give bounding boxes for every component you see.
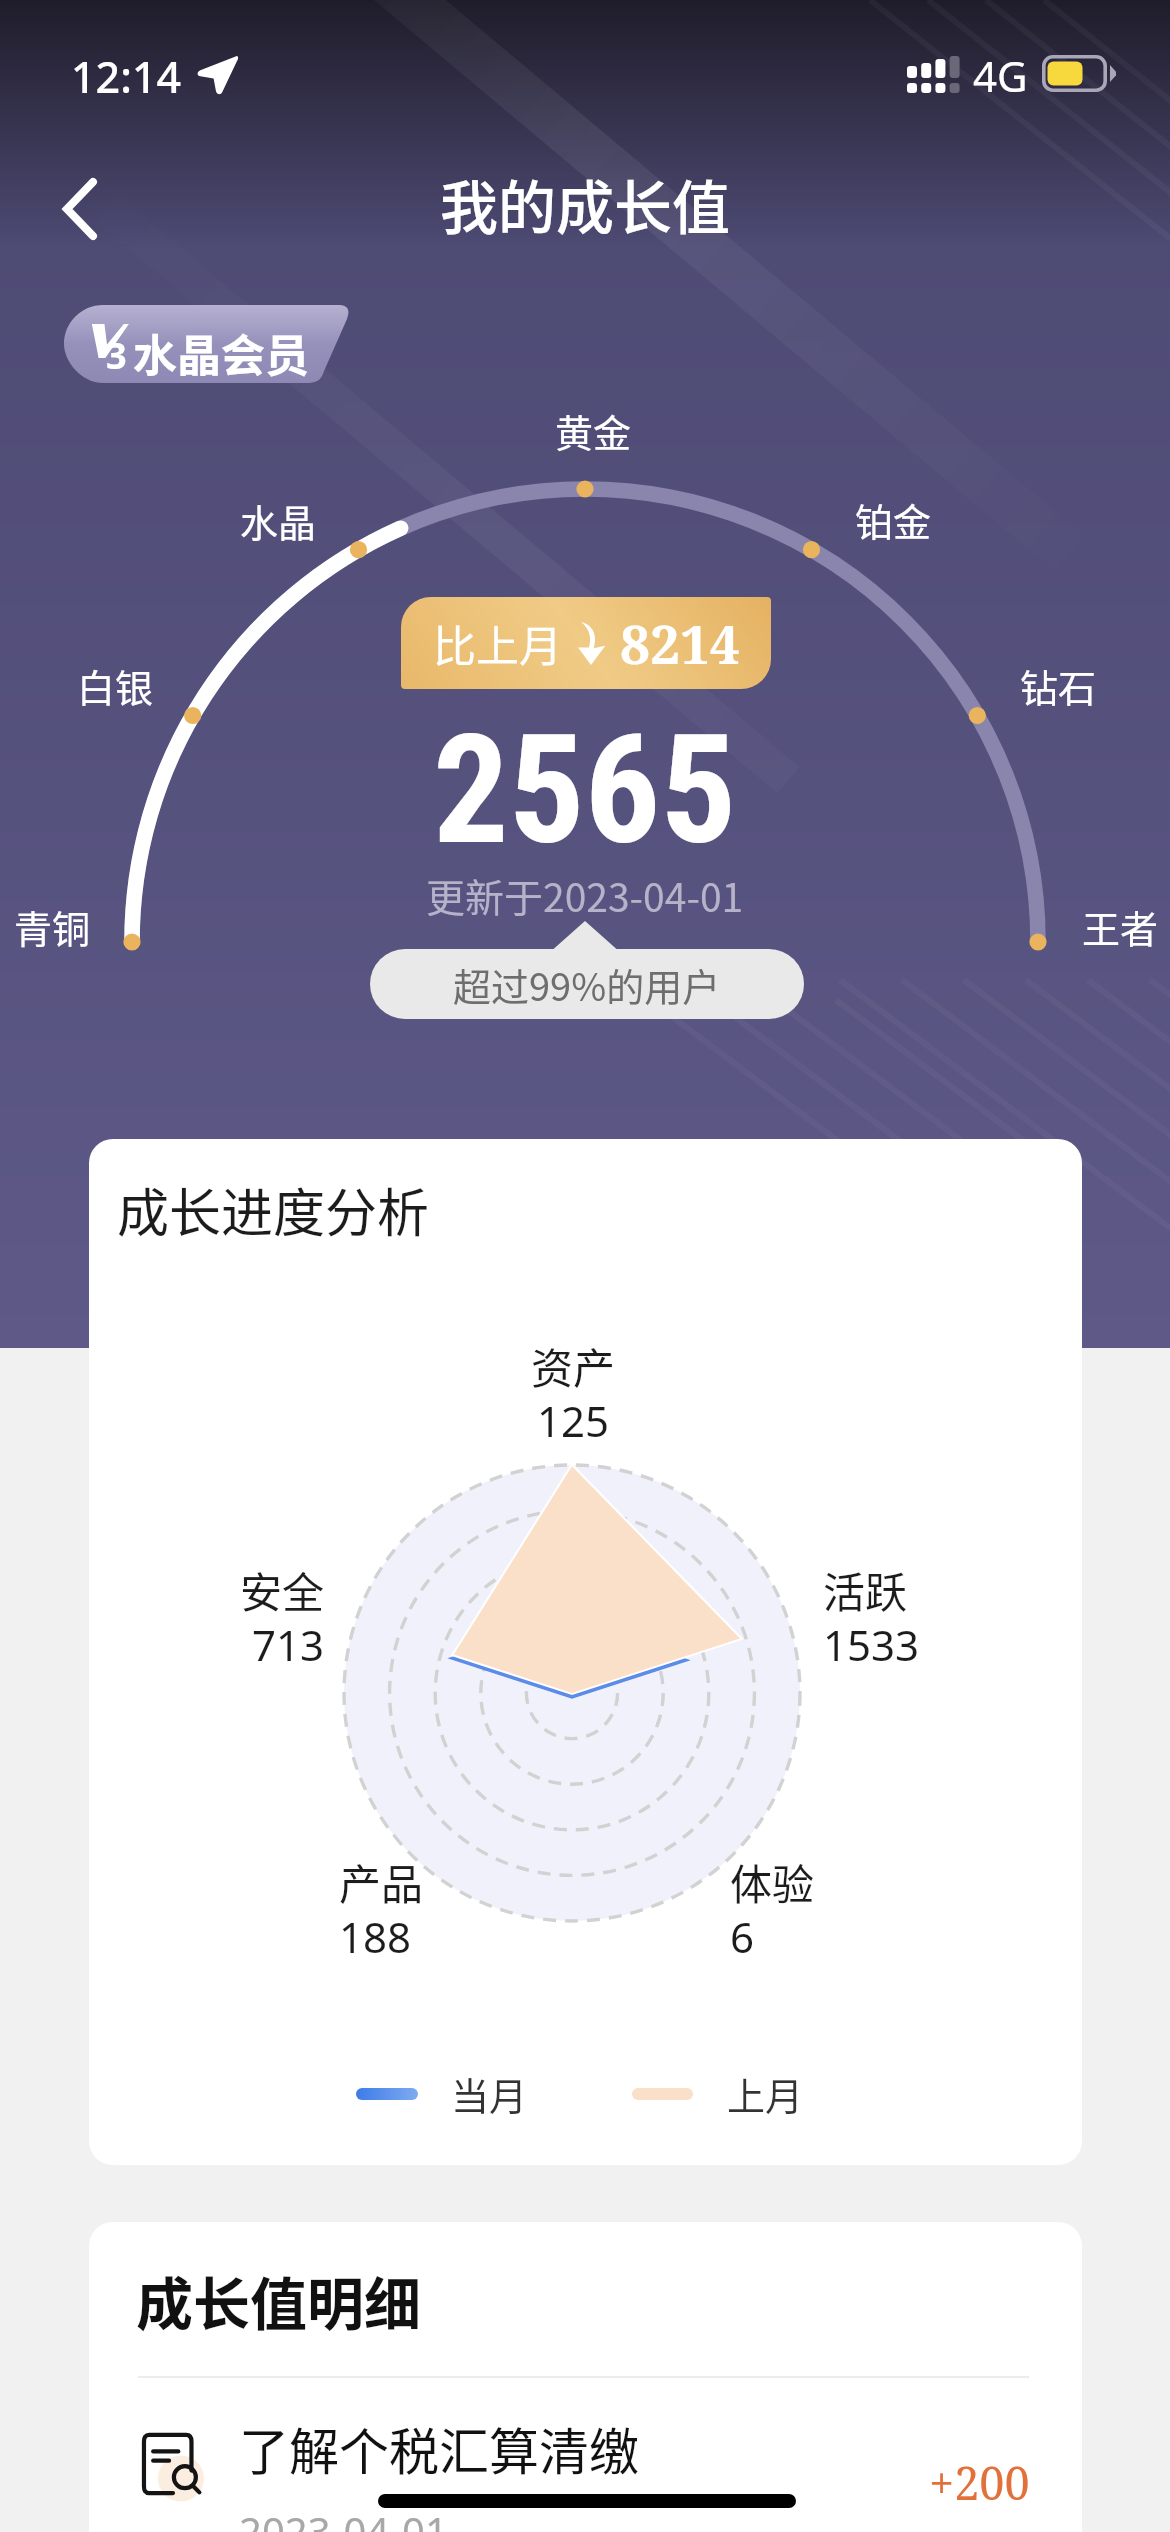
staticText: 青铜 xyxy=(14,899,91,954)
staticText: 12:14 xyxy=(71,47,182,106)
staticText: 超过99%的用户 xyxy=(453,957,721,1012)
staticText: +200 xyxy=(929,2452,1030,2513)
staticText: 713 xyxy=(252,1616,325,1673)
staticText: 6 xyxy=(730,1908,755,1965)
staticText: 比上月 xyxy=(433,612,562,674)
staticText: 体验 xyxy=(730,1851,815,1912)
staticText: 8214 xyxy=(620,607,740,679)
staticText: 2565 xyxy=(433,703,737,879)
button[interactable]: 3 xyxy=(64,305,350,383)
staticText: 我的成长值 xyxy=(440,162,731,246)
staticText: 水晶会员 xyxy=(133,321,309,383)
staticText: 水晶 xyxy=(240,493,317,548)
staticText: 4G xyxy=(973,47,1028,104)
staticText: 资产 xyxy=(531,1335,616,1396)
staticText: 成长值明细 xyxy=(136,2259,421,2342)
staticText: 成长进度分析 xyxy=(117,1172,430,1247)
staticText: 白银 xyxy=(77,658,154,713)
staticText: 王者 xyxy=(1082,899,1159,954)
staticText: 产品 xyxy=(339,1851,424,1912)
staticText: 钻石 xyxy=(1020,658,1097,713)
staticText: 黄金 xyxy=(555,403,632,458)
staticText: 更新于2023-04-01 xyxy=(426,867,744,923)
staticText: 1533 xyxy=(823,1616,920,1673)
staticText: 安全 xyxy=(240,1559,325,1620)
staticText: 上月 xyxy=(727,2066,804,2121)
staticText: 了解个税汇算清缴 xyxy=(239,2412,639,2484)
staticText: 铂金 xyxy=(855,492,932,547)
staticText: 188 xyxy=(339,1908,412,1965)
button[interactable]: Back xyxy=(28,157,132,261)
staticText: 125 xyxy=(537,1392,610,1449)
button[interactable]: 超过99%的用户 xyxy=(370,949,804,1019)
button[interactable]: 比上月 xyxy=(401,597,771,689)
staticText: 2023-04-01 xyxy=(239,2504,448,2532)
staticText: 活跃 xyxy=(823,1559,908,1620)
button[interactable]: 了解个税汇算清缴 xyxy=(89,2386,1082,2532)
staticText: 3 xyxy=(106,331,127,380)
staticText: 当月 xyxy=(451,2066,528,2121)
